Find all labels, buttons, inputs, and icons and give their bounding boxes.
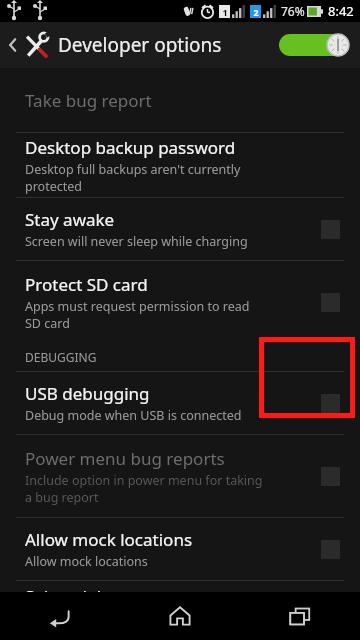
button[interactable]: Recent apps bbox=[240, 592, 360, 640]
staticText: Apps must request permission to read SD … bbox=[25, 298, 250, 331]
button[interactable]: Desktop backup password bbox=[0, 133, 360, 197]
button[interactable]: Allow mock locations bbox=[0, 518, 360, 580]
staticText: Power menu bug reports bbox=[25, 447, 225, 470]
staticText: Stay awake bbox=[25, 208, 115, 231]
button[interactable]: Take bug report bbox=[0, 68, 360, 132]
staticText: Debug mode when USB is connected bbox=[25, 407, 242, 424]
button[interactable]: Home bbox=[120, 592, 240, 640]
staticText: Select debug app bbox=[25, 585, 163, 592]
button[interactable]: Select debug app bbox=[0, 581, 360, 592]
button[interactable]: Toggle developer options bbox=[276, 31, 352, 59]
button[interactable]: USB debugging bbox=[0, 372, 360, 434]
staticText: 8:42 bbox=[328, 2, 354, 20]
button[interactable]: Back bbox=[0, 25, 228, 65]
button[interactable]: Protect SD card bbox=[0, 261, 360, 343]
staticText: Allow mock locations bbox=[25, 553, 148, 570]
staticText: Take bug report bbox=[25, 89, 152, 112]
button[interactable]: Back bbox=[0, 592, 120, 640]
staticText: Developer options bbox=[58, 32, 222, 58]
staticText: DEBUGGING bbox=[25, 349, 97, 365]
button[interactable]: Stay awake bbox=[0, 198, 360, 260]
staticText: Include option in power menu for taking … bbox=[25, 472, 263, 505]
staticText: 1 bbox=[222, 6, 228, 18]
staticText: 76% bbox=[281, 3, 305, 19]
staticText: Protect SD card bbox=[25, 273, 148, 296]
staticText: USB debugging bbox=[25, 382, 150, 405]
staticText: Screen will never sleep while charging bbox=[25, 233, 248, 250]
staticText: 2 bbox=[253, 6, 259, 18]
staticText: Allow mock locations bbox=[25, 528, 193, 551]
staticText: Desktop full backups aren't currently pr… bbox=[25, 161, 292, 194]
staticText: Desktop backup password bbox=[25, 136, 236, 159]
button[interactable]: Power menu bug reports bbox=[0, 435, 360, 517]
